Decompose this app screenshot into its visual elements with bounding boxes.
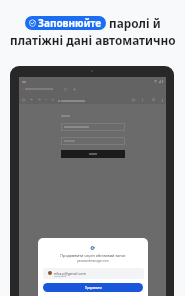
staticText: платіжні дані автоматично	[10, 32, 176, 48]
button[interactable]	[61, 150, 125, 158]
staticText: nika.p@gmail.com	[54, 271, 86, 276]
staticText: паролі й	[106, 15, 161, 31]
staticText: passwordmanager.com	[77, 259, 109, 263]
staticText: Заповнюйте	[38, 16, 102, 30]
staticText: Продовжити	[85, 286, 102, 290]
staticText: Продовжити через обліковий запис	[60, 253, 126, 258]
button[interactable]: nika.p@gmail.com	[43, 268, 144, 279]
button[interactable]: Продовжити	[43, 283, 143, 292]
